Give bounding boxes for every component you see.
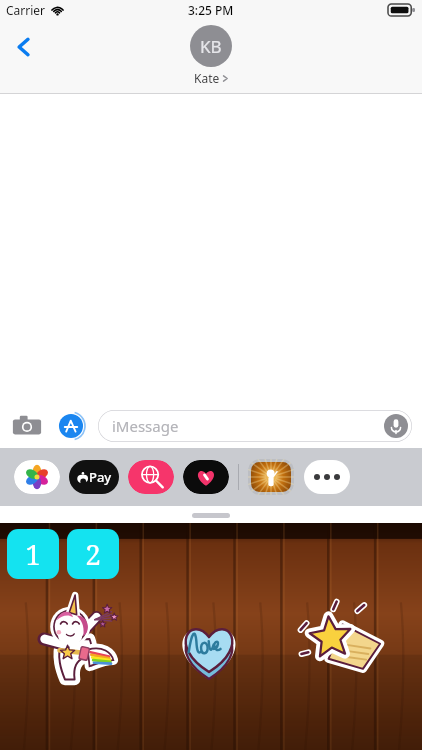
staticText: Pay bbox=[89, 468, 112, 486]
staticText: iMessage bbox=[112, 416, 179, 436]
button[interactable]: App Store bbox=[55, 410, 87, 442]
button[interactable]: Love heart sticker bbox=[168, 609, 250, 691]
button[interactable]: Camera bbox=[10, 409, 44, 443]
staticText: Carrier bbox=[6, 2, 46, 18]
staticText: KB bbox=[200, 35, 222, 58]
button[interactable]: Dictate bbox=[383, 413, 409, 439]
staticText: Kate bbox=[194, 70, 220, 86]
button[interactable]: More apps bbox=[304, 460, 350, 494]
button[interactable]: Sticker pack bbox=[248, 459, 294, 495]
button[interactable]: KB bbox=[190, 25, 232, 86]
button[interactable]: 2 bbox=[67, 529, 119, 579]
button[interactable]: Shooting star sticker bbox=[298, 599, 384, 685]
staticText: 2 bbox=[85, 535, 101, 573]
button[interactable]: Back bbox=[2, 25, 46, 69]
button[interactable]: Unicorn sticker bbox=[35, 595, 123, 683]
button[interactable]: Apple Pay bbox=[69, 460, 119, 494]
button[interactable]: Resize drawer bbox=[192, 513, 230, 518]
button[interactable]: 1 bbox=[7, 529, 59, 579]
button[interactable]: Photos bbox=[14, 460, 60, 494]
button[interactable]: Digital Touch bbox=[183, 460, 229, 494]
button[interactable]: iMessage bbox=[98, 410, 412, 442]
staticText: 3:25 PM bbox=[188, 2, 234, 18]
staticText: 1 bbox=[25, 535, 41, 573]
button[interactable]: Search bbox=[128, 460, 174, 494]
